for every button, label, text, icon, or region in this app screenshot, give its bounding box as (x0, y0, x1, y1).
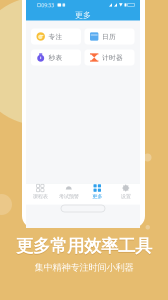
staticText: 秒表 (48, 54, 62, 62)
staticText: 日历 (102, 33, 116, 41)
staticText: 设置 (121, 193, 131, 200)
staticText: 课程表 (33, 193, 48, 200)
staticText: 更多 (92, 193, 102, 200)
staticText: 考试预警 (59, 193, 79, 200)
staticText: 集中精神专注时间小利器 (34, 262, 133, 273)
button[interactable]: 更多 (83, 184, 111, 200)
staticText: 更多 (75, 10, 91, 20)
staticText: 09:33 (41, 2, 54, 9)
staticText: 计时器 (102, 54, 123, 62)
button[interactable]: 计时器 (84, 49, 134, 65)
staticText: 更多常用效率工具 (16, 236, 152, 258)
button[interactable]: 考试预警 (54, 184, 83, 200)
staticText: 专注 (48, 33, 62, 41)
button[interactable]: 设置 (111, 184, 140, 200)
staticText: 更多常用效率工具 (16, 235, 152, 257)
button[interactable]: 专注 (31, 28, 81, 44)
button[interactable]: 日历 (84, 28, 134, 44)
button[interactable]: 课程表 (26, 184, 54, 200)
button[interactable]: 秒表 (31, 49, 81, 65)
